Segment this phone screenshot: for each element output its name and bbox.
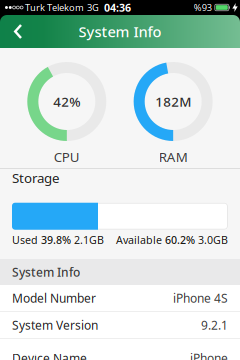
- button[interactable]: System Version: [0, 312, 240, 338]
- button[interactable]: Device Name: [0, 339, 240, 360]
- staticText: System Info: [12, 264, 80, 280]
- staticText: CPU: [54, 148, 80, 166]
- button[interactable]: Back: [0, 15, 31, 48]
- staticText: Device Name: [12, 350, 87, 360]
- staticText: iPhone: [190, 350, 228, 360]
- staticText: System Info: [78, 22, 161, 41]
- staticText: Turk Telekom: [25, 1, 84, 14]
- button[interactable]: Model Number: [0, 285, 240, 311]
- staticText: 42%: [53, 93, 80, 110]
- staticText: RAM: [159, 148, 188, 166]
- staticText: Used 39.8% 2.1GB: [12, 233, 104, 247]
- staticText: 04:36: [104, 0, 131, 15]
- staticText: Model Number: [12, 290, 96, 306]
- staticText: System Version: [12, 317, 98, 333]
- staticText: 3G: [87, 1, 99, 14]
- staticText: %93: [194, 1, 212, 14]
- staticText: iPhone 4S: [173, 290, 228, 306]
- staticText: 9.2.1: [201, 317, 228, 333]
- staticText: 182M: [155, 93, 191, 110]
- staticText: Available 60.2% 3.0GB: [116, 233, 228, 247]
- staticText: Storage: [12, 169, 60, 187]
